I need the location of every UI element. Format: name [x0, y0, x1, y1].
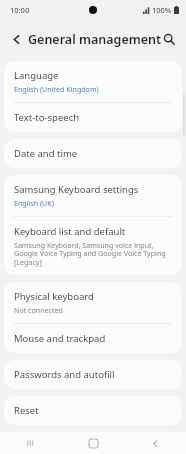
button[interactable]: Passwords and autofill	[4, 360, 182, 389]
button[interactable]: Date and time	[4, 139, 182, 168]
staticText: Samsung Keyboard, Samsung voice input, G…	[14, 240, 172, 267]
staticText: Language	[14, 69, 59, 82]
staticText: Reset	[14, 404, 39, 417]
staticText: Text-to-speech	[14, 111, 80, 124]
button[interactable]: Keyboard list and default	[4, 217, 182, 275]
button[interactable]: Language	[4, 61, 182, 102]
staticText: Samsung Keyboard settings	[14, 183, 139, 196]
button[interactable]: Reset	[4, 396, 182, 425]
staticText: English (UK)	[14, 198, 54, 208]
staticText: Keyboard list and default	[14, 225, 126, 238]
staticText: Physical keyboard	[14, 290, 94, 303]
button[interactable]: Samsung Keyboard settings	[4, 175, 182, 216]
staticText: 100%	[152, 5, 172, 15]
button[interactable]: Navigate up	[4, 27, 28, 51]
staticText: Passwords and autofill	[14, 368, 115, 381]
staticText: Date and time	[14, 147, 78, 160]
button[interactable]: Physical keyboard	[4, 282, 182, 323]
staticText: General management	[28, 31, 162, 48]
staticText: Mouse and trackpad	[14, 332, 106, 345]
staticText: English (United Kingdom)	[14, 84, 99, 94]
button[interactable]: Mouse and trackpad	[4, 324, 182, 353]
staticText: 10:00	[10, 5, 30, 15]
button[interactable]: Back	[124, 432, 186, 454]
button[interactable]: Recent apps	[0, 432, 62, 454]
button[interactable]: Search	[157, 27, 181, 51]
staticText: Not connected	[14, 305, 63, 315]
button[interactable]: Text-to-speech	[4, 103, 182, 132]
button[interactable]: Home	[62, 432, 124, 454]
